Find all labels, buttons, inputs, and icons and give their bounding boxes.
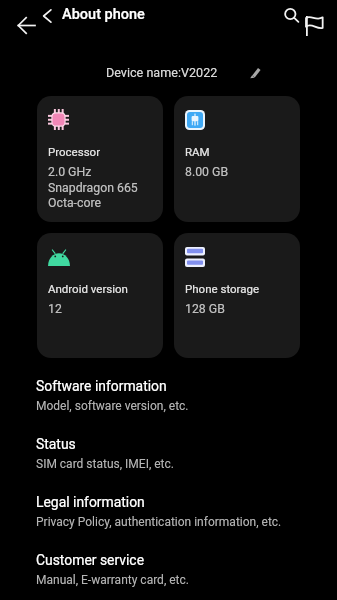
staticText: Privacy Policy, authentication informati…: [36, 515, 282, 529]
staticText: Status: [36, 436, 76, 452]
button[interactable]: Processor: [37, 96, 163, 222]
staticText: 12: [48, 302, 62, 316]
button[interactable]: Feedback: [301, 12, 329, 40]
button[interactable]: Software information: [0, 372, 337, 430]
staticText: Manual, E-warranty card, etc.: [36, 573, 189, 587]
staticText: Android version: [48, 282, 128, 295]
staticText: 2.0 GHz Snapdragon 665 Octa-core: [48, 165, 138, 210]
button[interactable]: Legal information: [0, 488, 337, 546]
button[interactable]: RAM: [174, 96, 300, 222]
staticText: Device name:V2022: [106, 65, 218, 80]
button[interactable]: Back: [34, 3, 59, 28]
staticText: Legal information: [36, 494, 145, 510]
button[interactable]: Status: [0, 430, 337, 488]
button[interactable]: Phone storage: [174, 233, 300, 358]
staticText: Customer service: [36, 552, 145, 568]
button[interactable]: Customer service: [0, 546, 337, 600]
staticText: Phone storage: [185, 282, 260, 295]
staticText: Software information: [36, 378, 167, 394]
staticText: RAM: [185, 145, 210, 158]
staticText: Model, software version, etc.: [36, 399, 189, 413]
button[interactable]: Navigate back: [12, 11, 40, 39]
staticText: 8.00 GB: [185, 165, 229, 179]
staticText: About phone: [62, 6, 145, 23]
staticText: Processor: [48, 145, 101, 158]
staticText: SIM card status, IMEI, etc.: [36, 457, 174, 471]
button[interactable]: Search: [277, 1, 305, 29]
staticText: 128 GB: [185, 302, 225, 316]
button[interactable]: Device name:V2022: [100, 61, 261, 83]
button[interactable]: Android version: [37, 233, 163, 358]
